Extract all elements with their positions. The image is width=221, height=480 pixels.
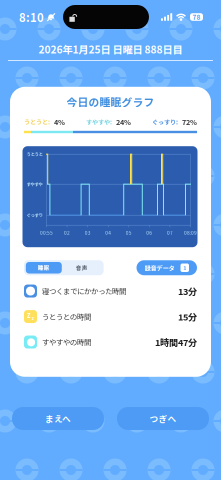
staticText: 06 <box>146 229 152 236</box>
staticText: うとうとの時間 <box>42 311 91 322</box>
staticText: 07 <box>167 229 173 236</box>
staticText: 05 <box>126 229 132 236</box>
staticText: 72% <box>182 117 197 127</box>
staticText: 寝つくまでにかかった時間 <box>42 286 126 296</box>
staticText: うとうと <box>26 151 42 157</box>
staticText: 今日の睡眠グラフ <box>66 94 154 109</box>
staticText: 78 <box>192 12 200 22</box>
staticText: Z <box>27 311 31 320</box>
staticText: z <box>31 315 33 321</box>
staticText: 2026年1月25日 日曜日 888日目 <box>38 42 182 56</box>
staticText: 睡眠 <box>38 264 50 272</box>
staticText: 15分 <box>178 310 197 323</box>
button[interactable]: 睡眠 <box>26 262 62 273</box>
button[interactable]: 録音データ <box>136 260 197 275</box>
staticText: 音声 <box>76 264 88 272</box>
staticText: 04 <box>105 229 111 236</box>
staticText: 1時間47分 <box>155 335 197 349</box>
staticText: 録音データ <box>144 263 174 272</box>
button[interactable]: 寝つくまでにかかった時間 <box>24 278 197 304</box>
staticText: ぐっすり <box>26 212 42 218</box>
staticText: 02 <box>64 229 70 236</box>
staticText: すやすや: <box>86 117 112 126</box>
staticText: すやすやの時間 <box>42 337 91 347</box>
button[interactable]: 音声 <box>62 262 102 273</box>
button[interactable]: Z <box>24 304 197 329</box>
staticText: すやすや <box>26 181 42 187</box>
staticText: 8:10 <box>19 9 44 25</box>
staticText: うとうと: <box>24 117 50 126</box>
staticText: 00:55 <box>40 229 53 236</box>
staticText: 4% <box>54 117 65 127</box>
button[interactable]: すやすやの時間 <box>24 329 197 355</box>
button[interactable]: つぎへ <box>117 407 209 430</box>
staticText: 08:09 <box>184 229 197 236</box>
staticText: 03 <box>85 229 91 236</box>
button[interactable]: まえへ <box>12 407 104 430</box>
staticText: ぐっすり: <box>152 117 178 126</box>
staticText: 24% <box>116 117 131 127</box>
staticText: 13分 <box>178 284 197 298</box>
staticText: 1 <box>183 264 186 272</box>
staticText: まえへ <box>45 412 71 425</box>
staticText: つぎへ <box>149 412 176 425</box>
